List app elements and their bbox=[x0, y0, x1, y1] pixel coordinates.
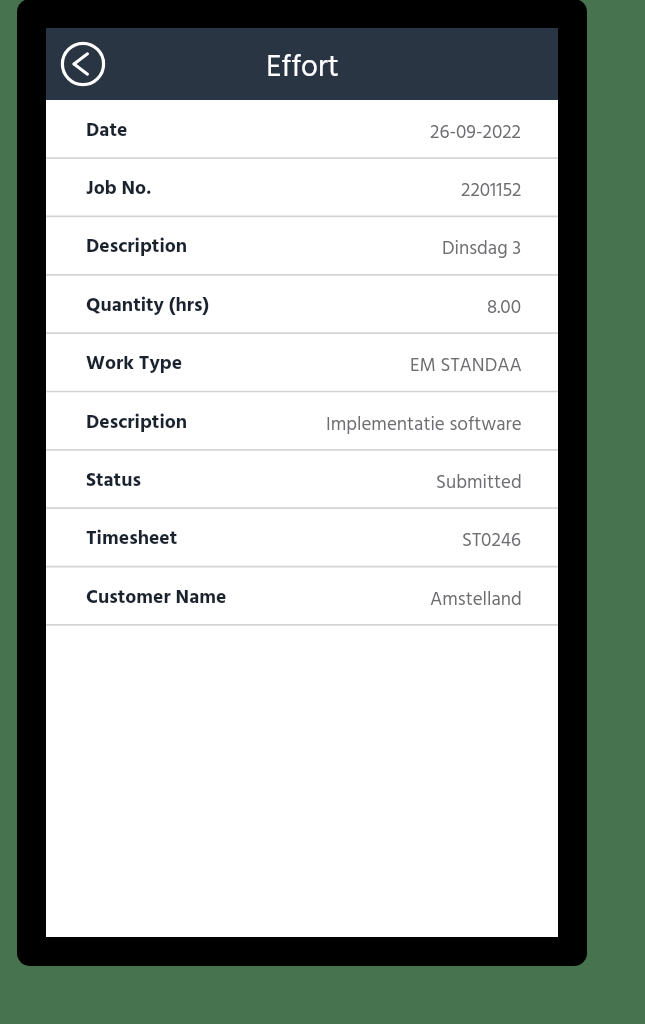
button[interactable]: Description bbox=[46, 392, 558, 450]
staticText: ST0246 bbox=[462, 526, 522, 556]
staticText: 8.00 bbox=[487, 293, 522, 323]
button[interactable]: Description bbox=[46, 216, 558, 274]
staticText: Quantity (hrs) bbox=[86, 290, 210, 321]
staticText: Effort bbox=[266, 44, 339, 92]
button[interactable]: Quantity (hrs) bbox=[46, 275, 558, 333]
staticText: Timesheet bbox=[86, 523, 178, 554]
staticText: 2201152 bbox=[461, 176, 522, 206]
staticText: Implementatie software bbox=[326, 410, 522, 440]
staticText: Status bbox=[86, 465, 141, 496]
staticText: Work Type bbox=[86, 348, 183, 379]
staticText: Customer Name bbox=[86, 582, 227, 613]
button[interactable]: Work Type bbox=[46, 333, 558, 391]
staticText: Description bbox=[86, 407, 188, 438]
staticText: Date bbox=[86, 115, 128, 146]
button[interactable]: Job No. bbox=[46, 158, 558, 216]
button[interactable]: Back bbox=[60, 41, 106, 87]
button[interactable]: Customer Name bbox=[46, 567, 558, 625]
button[interactable]: Date bbox=[46, 100, 558, 158]
staticText: 26-09-2022 bbox=[430, 118, 522, 148]
staticText: Dinsdag 3 bbox=[442, 234, 522, 264]
staticText: Job No. bbox=[86, 173, 152, 204]
staticText: EM STANDAA bbox=[410, 351, 522, 381]
staticText: Amstelland bbox=[430, 585, 522, 615]
button[interactable]: Status bbox=[46, 450, 558, 508]
button[interactable]: Timesheet bbox=[46, 508, 558, 566]
staticText: Description bbox=[86, 231, 188, 262]
staticText: Submitted bbox=[436, 468, 522, 498]
